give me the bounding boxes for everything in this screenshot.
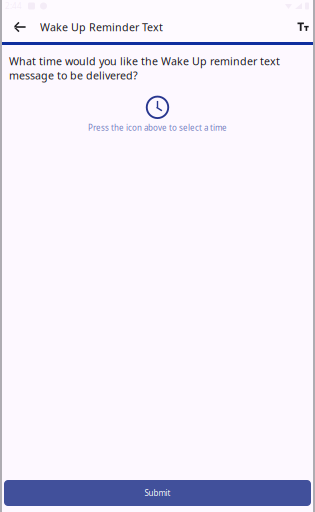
button[interactable]: Text size: [291, 12, 315, 42]
button[interactable]: Back: [0, 12, 40, 42]
button[interactable]: Select a time: [139, 92, 175, 122]
staticText: Wake Up Reminder Text: [40, 20, 163, 34]
button[interactable]: Submit: [4, 480, 311, 506]
staticText: Press the icon above to select a time: [88, 122, 227, 133]
staticText: What time would you like the Wake Up rem…: [9, 54, 280, 82]
staticText: 2:44: [5, 1, 22, 11]
staticText: Submit: [144, 488, 170, 498]
